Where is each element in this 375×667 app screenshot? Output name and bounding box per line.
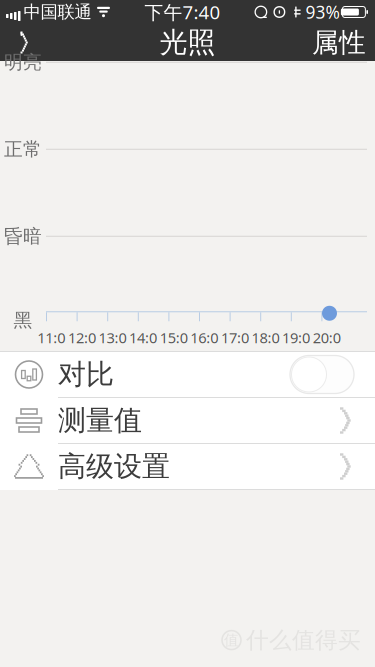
staticText: 93% bbox=[305, 0, 339, 23]
staticText: 18:00 bbox=[251, 328, 279, 367]
staticText: 16:00 bbox=[190, 328, 218, 367]
staticText: 12:00 bbox=[68, 328, 96, 367]
staticText: 值 bbox=[224, 631, 239, 649]
staticText: 黑 bbox=[13, 309, 32, 332]
staticText: 光照 bbox=[159, 25, 215, 60]
staticText: 对比 bbox=[58, 357, 114, 392]
staticText: 今天 bbox=[180, 373, 228, 403]
staticText: 14:00 bbox=[129, 328, 157, 367]
staticText: 19:00 bbox=[282, 328, 310, 367]
staticText: 正常 bbox=[4, 138, 42, 161]
staticText: 测量值 bbox=[58, 403, 142, 438]
staticText: 11:00 bbox=[37, 328, 65, 367]
staticText: 昏暗 bbox=[4, 225, 42, 248]
button[interactable]: 返回 bbox=[0, 24, 52, 61]
staticText: 什么值得买 bbox=[246, 626, 361, 654]
staticText: 高级设置 bbox=[58, 449, 170, 484]
button[interactable]: 测量值 bbox=[0, 398, 375, 443]
button[interactable]: 属性 bbox=[303, 24, 375, 61]
staticText: 明亮 bbox=[4, 51, 42, 74]
staticText: 20:00 bbox=[313, 328, 341, 367]
staticText: 17:00 bbox=[221, 328, 249, 367]
button[interactable]: 对比 bbox=[0, 352, 375, 397]
button[interactable]: 高级设置 bbox=[0, 444, 375, 489]
staticText: 中国联通 bbox=[23, 1, 91, 23]
staticText: 15:00 bbox=[160, 328, 188, 367]
staticText: 下午7:40 bbox=[144, 0, 220, 24]
staticText: 13:00 bbox=[98, 328, 126, 367]
staticText: 属性 bbox=[312, 26, 366, 59]
